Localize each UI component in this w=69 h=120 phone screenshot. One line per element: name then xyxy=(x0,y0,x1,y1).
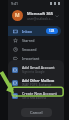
staticText: Microsoft 365 xyxy=(27,11,54,16)
staticText: Get a new address xyxy=(22,96,47,100)
button[interactable]: Create New Account xyxy=(8,89,64,102)
staticText: Snoozed xyxy=(22,47,58,52)
staticText: 9:41 xyxy=(11,1,18,6)
staticText: Spam xyxy=(22,98,58,103)
staticText: Cancel xyxy=(30,110,43,115)
staticText: Starred xyxy=(22,38,58,43)
button[interactable]: Snoozed xyxy=(8,45,61,54)
button[interactable]: Drafts xyxy=(8,77,61,87)
staticText: Sent xyxy=(22,65,58,70)
staticText: All Mail xyxy=(22,89,58,94)
staticText: Important xyxy=(22,56,58,61)
button[interactable]: Add Gmail Account xyxy=(8,63,64,76)
button[interactable]: Spam xyxy=(8,96,61,105)
staticText: 128 xyxy=(49,29,55,33)
staticText: Sign in to Google xyxy=(22,70,45,74)
staticText: Inbox xyxy=(22,29,46,34)
staticText: Trash xyxy=(22,107,58,112)
button[interactable]: Add Other Mailbox xyxy=(8,76,64,89)
staticText: Add Gmail Account xyxy=(22,65,55,70)
button[interactable]: Expand account list xyxy=(54,13,60,19)
staticText: Drafts xyxy=(22,80,48,85)
staticText: Add Other Mailbox xyxy=(22,78,55,83)
button[interactable]: Cancel xyxy=(8,105,64,120)
staticText: user@outlook.com xyxy=(27,17,54,21)
button[interactable]: Sent xyxy=(8,63,61,72)
staticText: M xyxy=(15,12,20,19)
staticText: Create New Account xyxy=(22,91,57,96)
button[interactable]: Important xyxy=(8,54,61,63)
staticText: 12 xyxy=(51,80,55,84)
button[interactable]: Trash xyxy=(8,105,61,114)
staticText: IMAP, POP3, Exchange xyxy=(22,83,52,87)
button[interactable]: Starred xyxy=(8,36,61,45)
button[interactable]: All Mail xyxy=(8,87,61,96)
button[interactable]: M xyxy=(12,10,60,21)
button[interactable]: Inbox xyxy=(8,26,61,36)
